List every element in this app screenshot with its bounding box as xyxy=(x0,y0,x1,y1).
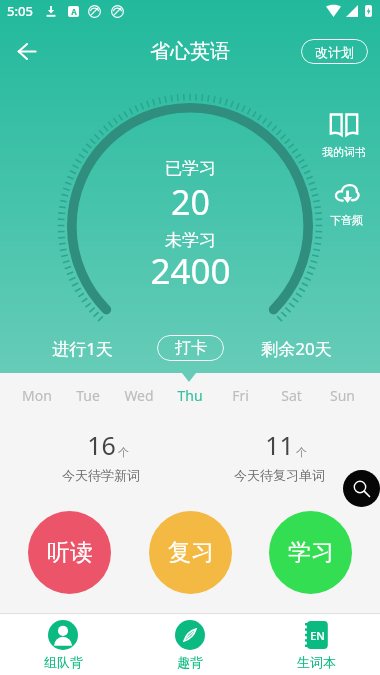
button[interactable]: 11 xyxy=(190,428,368,483)
staticText: A xyxy=(71,6,77,17)
button[interactable]: 16 xyxy=(12,428,190,483)
staticText: Fri xyxy=(232,386,249,405)
button[interactable]: Wed xyxy=(113,377,164,413)
button[interactable]: Fri xyxy=(215,377,266,413)
staticText: 改计划 xyxy=(315,44,354,60)
staticText: 复习 xyxy=(168,538,214,567)
button[interactable]: Thu xyxy=(164,377,215,413)
staticText: EN xyxy=(310,628,325,643)
staticText: 个 xyxy=(296,445,307,459)
staticText: 组队背 xyxy=(44,654,83,670)
staticText: Mon xyxy=(22,386,52,405)
staticText: 20 xyxy=(171,179,210,225)
button[interactable]: Back xyxy=(5,29,49,73)
staticText: 听读 xyxy=(47,538,93,567)
button[interactable]: 我的词书 xyxy=(312,112,376,159)
staticText: Thu xyxy=(177,386,203,405)
staticText: 下音频 xyxy=(330,213,363,227)
staticText: 进行1天 xyxy=(52,337,113,360)
button[interactable]: 学习 xyxy=(269,511,352,594)
button[interactable]: Mon xyxy=(12,377,62,413)
button[interactable]: Sun xyxy=(317,377,368,413)
button[interactable]: 下音频 xyxy=(314,183,378,227)
staticText: 未学习 xyxy=(165,230,216,251)
staticText: Sat xyxy=(281,386,302,405)
button[interactable]: 打卡 xyxy=(157,335,224,361)
staticText: 今天待学新词 xyxy=(62,467,140,483)
staticText: 5:05 xyxy=(7,2,33,20)
staticText: 学习 xyxy=(288,538,334,567)
button[interactable]: 改计划 xyxy=(301,39,368,64)
button[interactable]: 趣背 xyxy=(126,614,253,675)
button[interactable]: 复习 xyxy=(149,511,232,594)
button[interactable]: 组队背 xyxy=(0,614,126,675)
staticText: 剩余20天 xyxy=(261,337,332,360)
staticText: 省心英语 xyxy=(150,39,230,64)
staticText: Sun xyxy=(330,386,355,405)
staticText: 我的词书 xyxy=(322,145,366,159)
staticText: 生词本 xyxy=(297,654,336,670)
button[interactable]: Search xyxy=(343,470,380,507)
button[interactable]: Sat xyxy=(266,377,317,413)
button[interactable]: 听读 xyxy=(28,511,111,594)
staticText: 趣背 xyxy=(177,654,203,670)
staticText: 11 xyxy=(265,428,294,462)
staticText: 打卡 xyxy=(175,338,207,358)
staticText: 今天待复习单词 xyxy=(234,467,325,483)
staticText: Wed xyxy=(124,386,154,405)
staticText: Tue xyxy=(76,386,100,405)
staticText: 2400 xyxy=(150,247,231,295)
staticText: 16 xyxy=(87,428,116,462)
button[interactable]: Tue xyxy=(62,377,113,413)
staticText: 已学习 xyxy=(165,158,216,179)
staticText: 个 xyxy=(118,445,129,459)
button[interactable]: EN xyxy=(253,614,380,675)
